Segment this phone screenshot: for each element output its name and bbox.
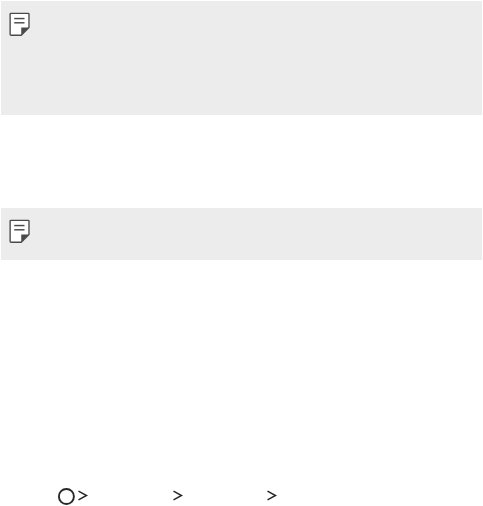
button[interactable]: Article hero image <box>1 1 482 115</box>
button[interactable]: Home <box>58 488 76 506</box>
button[interactable]: Next crumb <box>266 490 276 501</box>
button[interactable]: Next crumb <box>77 490 87 501</box>
button[interactable]: Next crumb <box>172 490 182 501</box>
button[interactable]: Inline image <box>1 208 482 260</box>
